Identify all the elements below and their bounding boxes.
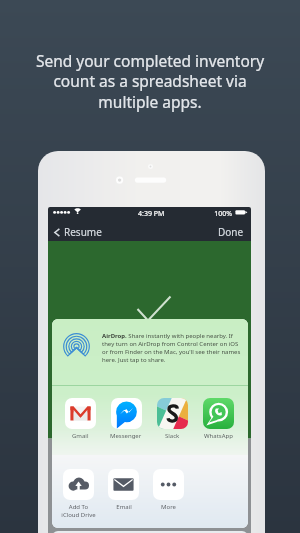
button[interactable]: Email [101,469,146,511]
button[interactable]: Add to iCloud Drive [56,469,101,519]
staticText: Slack [165,432,180,440]
button[interactable]: AirDrop. Share instantly with people nea… [52,319,248,385]
staticText: More [161,503,176,511]
staticText: Add To iCloud Drive [61,503,96,519]
staticText: AirDrop. Share instantly with people nea… [102,332,242,364]
staticText: WhatsApp [204,432,233,440]
button[interactable]: Done [210,223,251,242]
staticText: 100% [132,209,232,219]
button[interactable]: Resume [48,223,110,242]
button[interactable]: Slack [149,398,195,440]
button[interactable]: More [146,469,191,511]
button[interactable] [52,531,248,533]
staticText: Done [218,225,244,239]
other: Add to iCloud Drive [63,469,94,500]
staticText: Resume [64,225,102,239]
button[interactable]: WhatsApp [195,398,241,440]
staticText: 4:39 PM [138,209,165,219]
staticText: Messenger [110,432,142,440]
button[interactable]: Gmail [57,398,103,440]
button[interactable]: Messenger [103,398,149,440]
other: More [153,469,184,500]
staticText: Email [116,503,132,511]
staticText: Send your completed inventory count as a… [0,50,300,113]
staticText: Gmail [72,432,89,440]
other: Email [108,469,139,500]
